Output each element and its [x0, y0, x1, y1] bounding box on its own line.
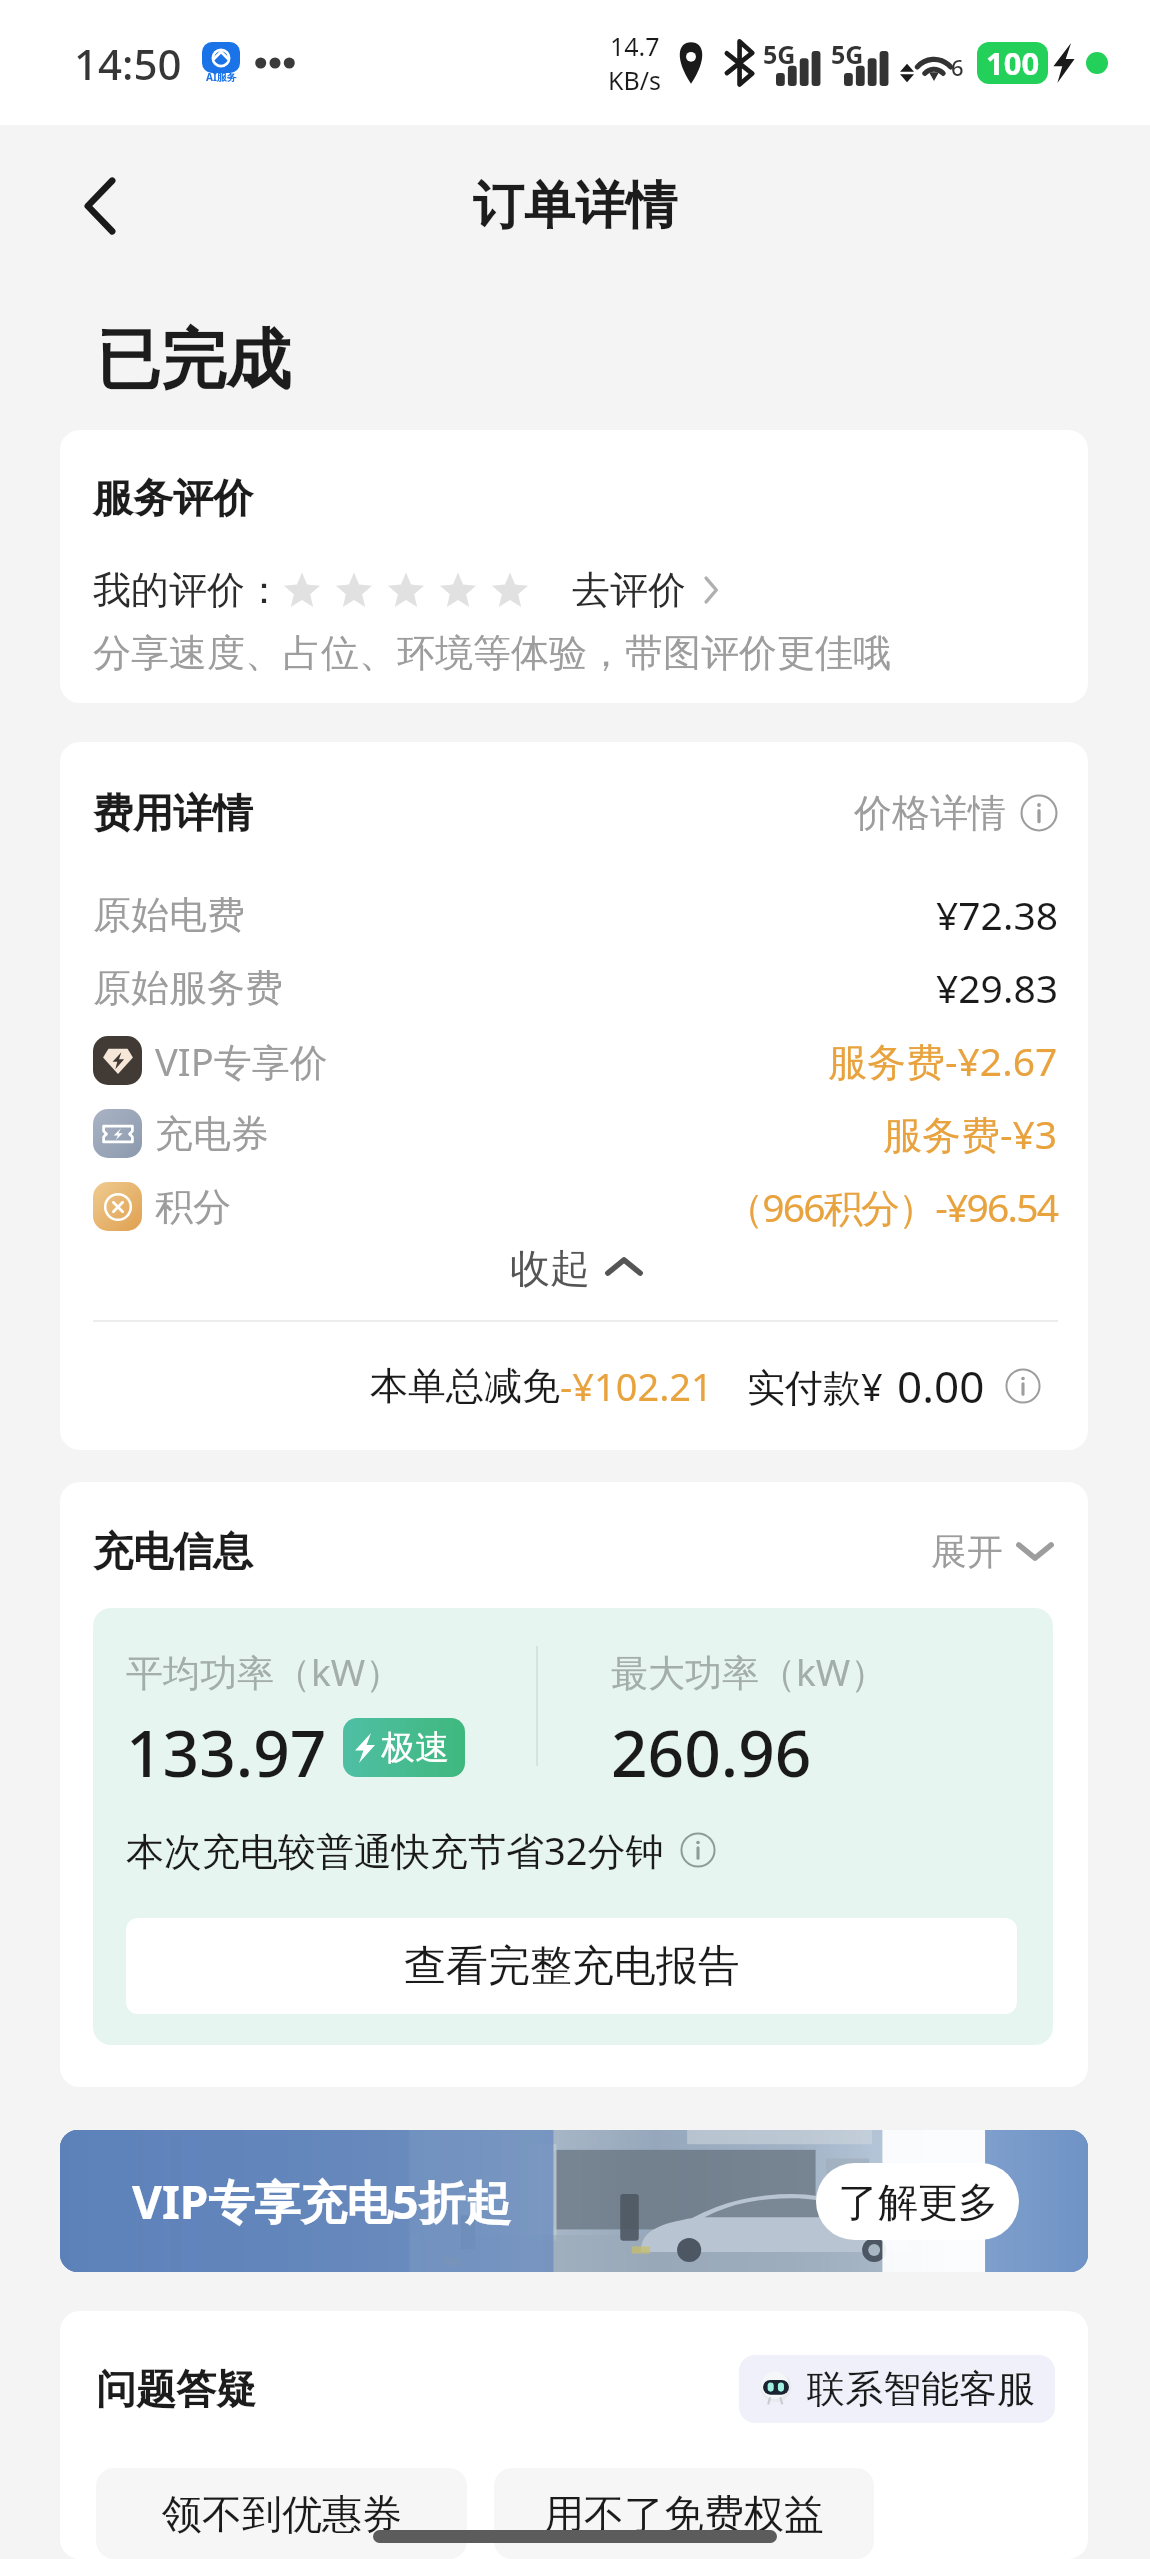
button[interactable]: 查看完整充电报告 [126, 1918, 1017, 2014]
staticText: 积分 [155, 1183, 231, 1231]
button[interactable]: 收起 [93, 1243, 1058, 1289]
staticText: ¥29.83 [936, 961, 1058, 1014]
button[interactable]: Back [45, 151, 155, 261]
staticText: 服务费-¥2.67 [828, 1034, 1058, 1087]
button[interactable]: 用不了免费权益 [494, 2468, 874, 2559]
staticText: 充电券 [155, 1110, 269, 1158]
staticText: 充电信息 [93, 1526, 253, 1576]
button[interactable]: 联系智能客服 [739, 2355, 1055, 2423]
button[interactable]: 去评价 [572, 566, 718, 614]
staticText: 了解更多 [838, 2177, 998, 2227]
staticText: 133.97 [126, 1709, 327, 1786]
staticText: 14:50 [74, 35, 182, 92]
staticText: ¥72.38 [936, 888, 1058, 941]
staticText: 费用详情 [93, 788, 253, 838]
staticText: AI服务 [206, 70, 237, 84]
button[interactable]: 价格详情 [854, 789, 1058, 837]
staticText: 联系智能客服 [807, 2365, 1035, 2413]
staticText: 14.7 [610, 29, 660, 63]
staticText: 100 [986, 42, 1040, 84]
staticText: 0.00 [897, 1356, 985, 1416]
staticText: 分享速度、占位、环境等体验，带图评价更佳哦 [93, 629, 891, 677]
staticText: VIP专享价 [155, 1035, 328, 1087]
staticText: 本次充电较普通快充节省32分钟 [126, 1824, 664, 1876]
staticText: 我的评价： [93, 566, 283, 614]
staticText: 5G [831, 37, 864, 71]
staticText: （966积分）-¥96.54 [725, 1180, 1058, 1233]
staticText: 260.96 [611, 1709, 812, 1786]
staticText: KB/s [608, 63, 662, 97]
staticText: 价格详情 [854, 789, 1006, 837]
staticText: VIP专享充电5折起 [132, 2170, 511, 2233]
staticText: 已完成 [96, 319, 291, 401]
button[interactable]: 领不到优惠券 [96, 2468, 467, 2559]
staticText: 最大功率（kW） [611, 1646, 888, 1697]
staticText: 查看完整充电报告 [404, 1940, 740, 1993]
staticText: 去评价 [572, 566, 686, 614]
staticText: 收起 [510, 1243, 590, 1289]
staticText: 服务评价 [93, 473, 253, 523]
staticText: 原始电费 [93, 891, 245, 939]
staticText: 平均功率（kW） [126, 1646, 403, 1697]
staticText: 极速 [381, 1726, 449, 1769]
staticText: 原始服务费 [93, 964, 283, 1012]
staticText: 领不到优惠券 [162, 2489, 402, 2539]
staticText: 展开 [931, 1529, 1003, 1574]
staticText: 实付款¥ [747, 1360, 883, 1412]
staticText: -¥102.21 [560, 1360, 713, 1412]
staticText: 问题答疑 [96, 2364, 256, 2414]
staticText: 6 [951, 52, 964, 82]
staticText: 订单详情 [473, 174, 677, 238]
staticText: 服务费-¥3 [883, 1107, 1058, 1160]
staticText: 本单总减免 [370, 1362, 560, 1410]
button[interactable]: VIP专享充电5折起 [60, 2130, 1088, 2272]
button[interactable]: 展开 [931, 1529, 1053, 1574]
staticText: 用不了免费权益 [544, 2489, 824, 2539]
staticText: 5G [763, 37, 796, 71]
